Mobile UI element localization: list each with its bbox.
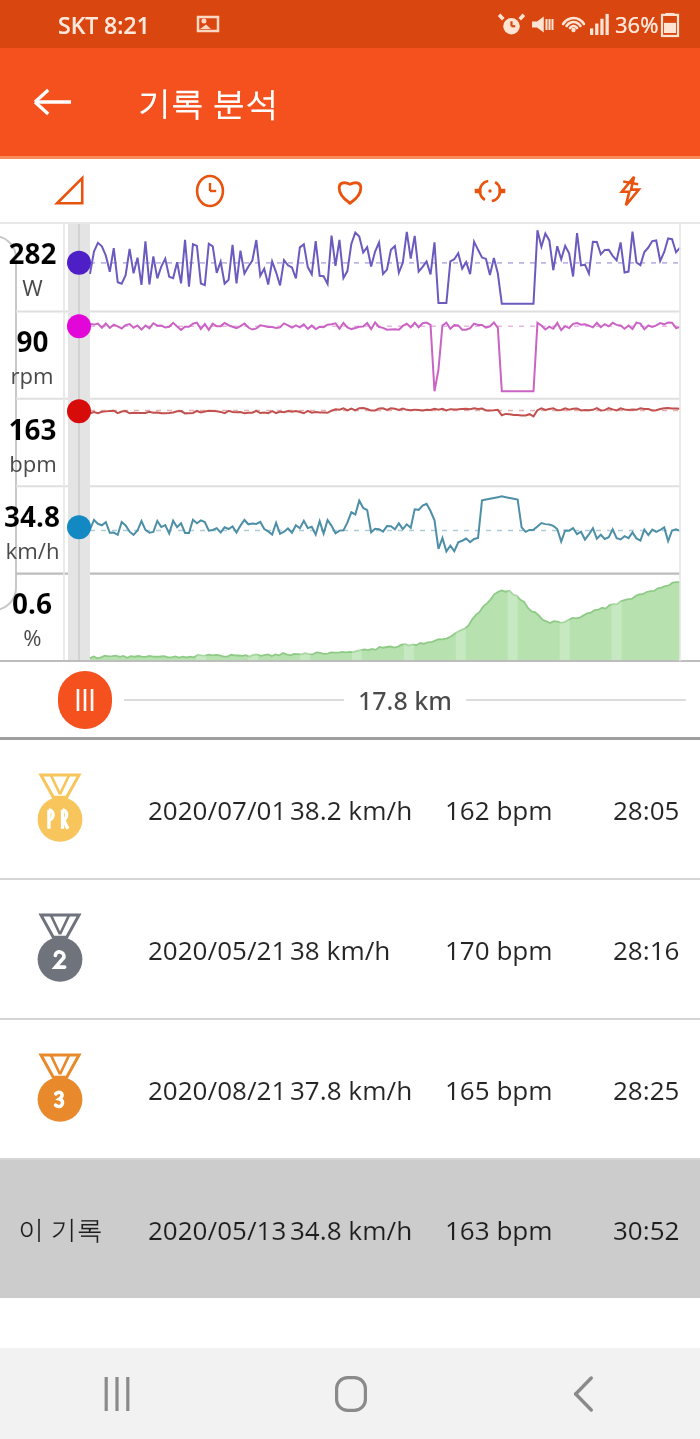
staticText: 28:16 <box>613 932 680 967</box>
staticText: 2020/05/21 <box>148 932 287 967</box>
button[interactable]: Back <box>22 71 84 133</box>
button[interactable]: Heart rate <box>280 159 420 222</box>
button[interactable]: 이 기록 <box>0 1160 700 1298</box>
staticText: 163 <box>8 410 57 448</box>
staticText: 165 bpm <box>445 1072 553 1107</box>
button[interactable]: Time <box>140 159 280 222</box>
button[interactable]: 2020/08/21 <box>0 1020 700 1158</box>
staticText: 282 <box>8 234 57 272</box>
staticText: 기록 분석 <box>138 80 279 125</box>
staticText: 28:25 <box>613 1072 680 1107</box>
button[interactable]: 2020/07/01 <box>0 740 700 878</box>
staticText: 34.8 km/h <box>290 1212 413 1247</box>
staticText: % <box>23 622 42 652</box>
staticText: 28:05 <box>613 792 680 827</box>
staticText: 36% <box>615 9 659 39</box>
button[interactable]: 2020/05/21 <box>0 880 700 1018</box>
button[interactable]: Power <box>560 159 700 222</box>
staticText: W <box>22 272 43 302</box>
staticText: 162 bpm <box>445 792 553 827</box>
staticText: 0.6 <box>12 584 52 622</box>
button[interactable]: Elevation <box>0 159 140 222</box>
staticText: 37.8 km/h <box>290 1072 413 1107</box>
staticText: 2020/07/01 <box>148 792 287 827</box>
button[interactable]: Home <box>234 1348 467 1439</box>
staticText: 163 bpm <box>445 1212 553 1247</box>
button[interactable]: Scrub handle <box>58 671 112 729</box>
staticText: 2020/08/21 <box>148 1072 287 1107</box>
staticText: 90 <box>16 322 49 360</box>
staticText: rpm <box>10 360 54 390</box>
staticText: bpm <box>9 448 57 478</box>
button[interactable]: Recent apps <box>0 1348 234 1439</box>
staticText: 30:52 <box>613 1212 680 1247</box>
staticText: 2020/05/13 <box>148 1212 287 1247</box>
button[interactable]: Back <box>467 1348 700 1439</box>
staticText: 38.2 km/h <box>290 792 413 827</box>
staticText: 34.8 <box>4 497 60 535</box>
staticText: 38 km/h <box>290 932 391 967</box>
staticText: 이 기록 <box>18 1211 103 1247</box>
staticText: km/h <box>5 535 60 565</box>
button[interactable]: Cadence <box>420 159 560 222</box>
staticText: SKT 8:21 <box>58 9 150 40</box>
staticText: 170 bpm <box>445 932 553 967</box>
staticText: 17.8 km <box>358 683 452 717</box>
